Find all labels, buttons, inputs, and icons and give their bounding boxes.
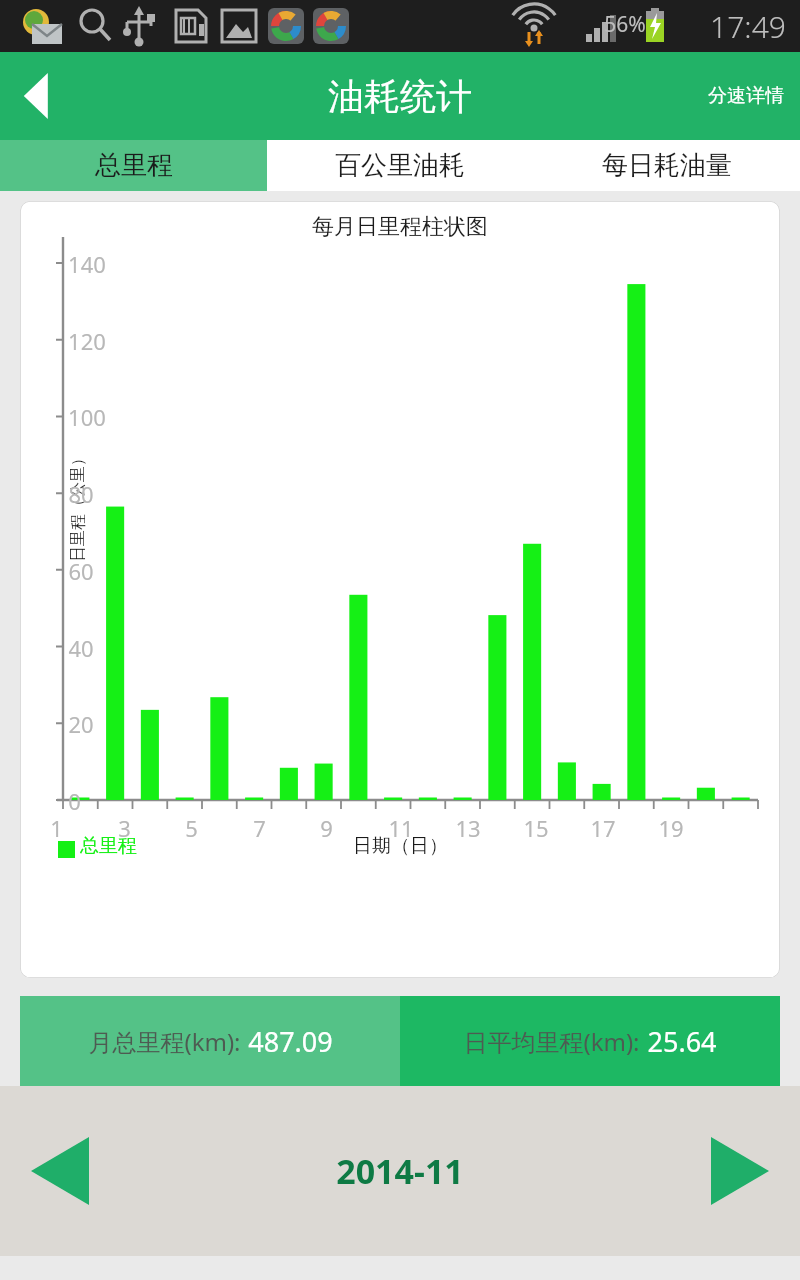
staticText: 20	[68, 709, 94, 739]
staticText: 总里程	[80, 834, 137, 858]
staticText: 56%	[604, 10, 646, 39]
button[interactable]: 总里程	[0, 140, 267, 191]
button[interactable]: 日平均里程(km):	[400, 996, 780, 1086]
button[interactable]: Back	[0, 52, 78, 140]
staticText: 油耗统计	[328, 74, 472, 119]
staticText: 日平均里程(km):	[463, 1025, 640, 1058]
staticText: 5	[185, 813, 198, 843]
button[interactable]: Previous month	[10, 1126, 110, 1216]
staticText: 17	[590, 813, 616, 843]
staticText: 日里程（公里）	[68, 450, 88, 562]
staticText: 15	[523, 813, 549, 843]
staticText: 11	[388, 813, 414, 843]
staticText: 总里程	[95, 149, 173, 182]
staticText: 分速详情	[708, 84, 784, 108]
staticText: 日期（日）	[353, 834, 448, 858]
staticText: 7	[253, 813, 266, 843]
staticText: 17:49	[710, 6, 786, 47]
button[interactable]: 月总里程(km):	[20, 996, 400, 1086]
staticText: 2014-11	[336, 1148, 464, 1194]
staticText: 百公里油耗	[335, 149, 465, 182]
staticText: 40	[68, 633, 94, 663]
staticText: 140	[68, 249, 106, 279]
staticText: 0	[68, 786, 81, 816]
button[interactable]: 每日耗油量	[533, 140, 800, 191]
staticText: 19	[658, 813, 684, 843]
staticText: 每日耗油量	[602, 149, 732, 182]
staticText: 3	[118, 813, 131, 843]
staticText: 487.09	[241, 1023, 333, 1060]
button[interactable]: Next month	[690, 1126, 790, 1216]
staticText: 9	[320, 813, 333, 843]
staticText: 月总里程(km):	[88, 1025, 241, 1058]
staticText: 13	[455, 813, 481, 843]
staticText: 80	[68, 479, 94, 509]
staticText: 25.64	[640, 1023, 717, 1060]
staticText: 120	[68, 326, 106, 356]
button[interactable]: 分速详情	[700, 72, 792, 120]
staticText: 1	[50, 813, 63, 843]
staticText: 100	[68, 402, 106, 432]
staticText: 每月日里程柱状图	[312, 213, 488, 241]
staticText: 60	[68, 556, 94, 586]
button[interactable]: 百公里油耗	[267, 140, 533, 191]
